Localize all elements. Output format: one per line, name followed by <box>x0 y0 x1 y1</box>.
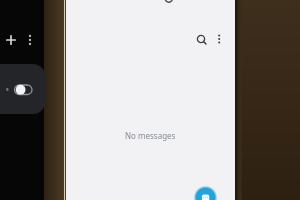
staticText: No messages <box>125 130 176 141</box>
button[interactable] <box>213 32 225 46</box>
button[interactable] <box>24 33 36 47</box>
button[interactable] <box>193 185 218 200</box>
button[interactable]: s <box>0 64 45 114</box>
button[interactable] <box>194 32 208 46</box>
button[interactable] <box>4 33 18 47</box>
staticText: s <box>6 85 9 92</box>
